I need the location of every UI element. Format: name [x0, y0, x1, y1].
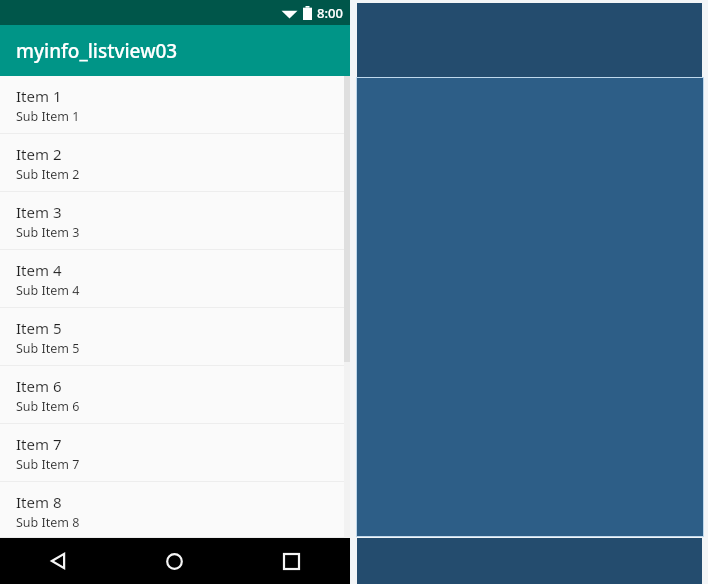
button[interactable]: Item 2	[0, 134, 350, 192]
staticText: Item 2	[16, 144, 62, 164]
button[interactable]: Item 7	[0, 424, 350, 482]
staticText: Sub Item 4	[16, 282, 80, 299]
staticText: Item 5	[16, 318, 62, 338]
button[interactable]: Item 4	[0, 250, 350, 308]
staticText: Sub Item 2	[16, 166, 80, 183]
staticText: Sub Item 8	[16, 514, 80, 531]
staticText: myinfo_listview03	[16, 38, 178, 64]
staticText: Item 7	[16, 434, 62, 454]
staticText: Sub Item 7	[16, 456, 80, 473]
staticText: 8:00	[317, 4, 343, 22]
staticText: Sub Item 5	[16, 340, 80, 357]
button[interactable]: Item 1	[0, 76, 350, 134]
button[interactable]: Item 6	[0, 366, 350, 424]
button[interactable]: Item 8	[0, 482, 350, 538]
button[interactable]: Home	[116, 538, 233, 584]
button[interactable]: Back	[0, 538, 116, 584]
staticText: Item 1	[16, 86, 62, 106]
staticText: Item 3	[16, 202, 62, 222]
button[interactable]: Item 5	[0, 308, 350, 366]
button[interactable]: Item 3	[0, 192, 350, 250]
staticText: Item 8	[16, 492, 62, 512]
button[interactable]: Recents	[233, 538, 350, 584]
staticText: Item 6	[16, 376, 62, 396]
button[interactable]: myinfo_listview03	[0, 25, 350, 76]
staticText: Sub Item 3	[16, 224, 80, 241]
staticText: Sub Item 1	[16, 108, 80, 125]
staticText: Item 4	[16, 260, 62, 280]
staticText: Sub Item 6	[16, 398, 80, 415]
